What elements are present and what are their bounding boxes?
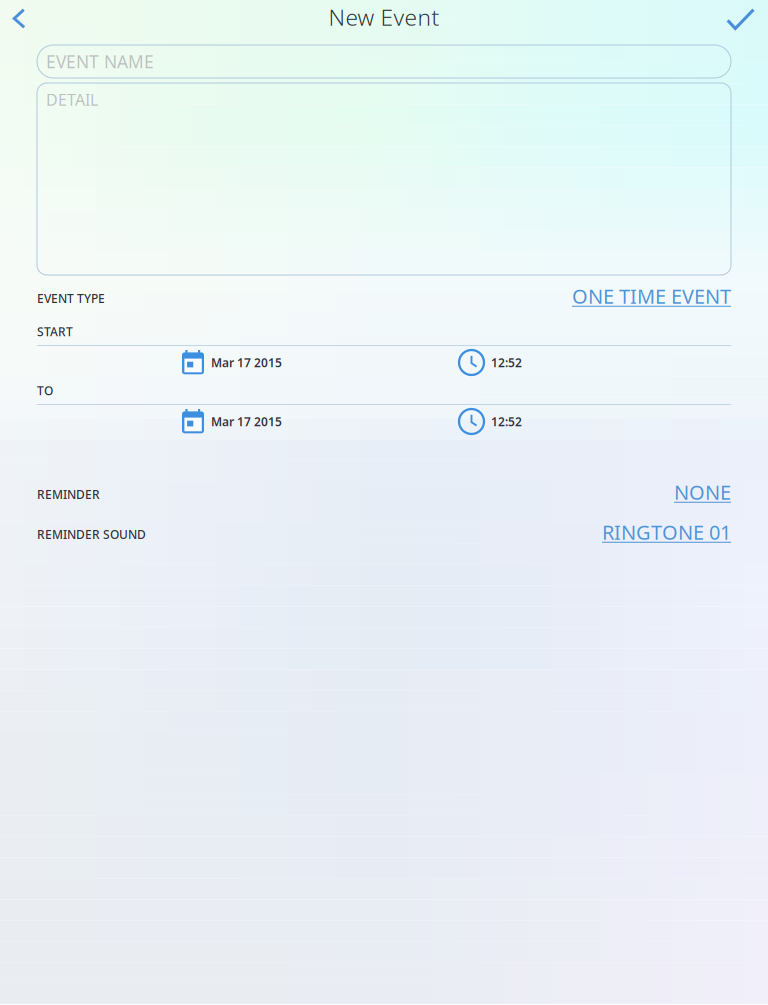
staticText: NONE: [674, 479, 731, 505]
staticText: START: [37, 323, 73, 339]
button[interactable]: Mar 17 2015: [182, 409, 282, 434]
staticText: EVENT TYPE: [37, 290, 105, 306]
button[interactable]: Mar 17 2015: [182, 350, 282, 375]
staticText: EVENT NAME: [46, 50, 154, 73]
button[interactable]: DETAIL: [37, 83, 731, 275]
staticText: ONE TIME EVENT: [572, 283, 731, 309]
button[interactable]: EVENT NAME: [37, 45, 731, 78]
button[interactable]: Back: [0, 0, 39, 44]
button[interactable]: 12:52: [459, 409, 522, 434]
staticText: Mar 17 2015: [211, 413, 282, 429]
staticText: REMINDER SOUND: [37, 526, 146, 542]
staticText: RINGTONE 01: [602, 519, 731, 545]
staticText: Mar 17 2015: [211, 354, 282, 370]
staticText: REMINDER: [37, 486, 100, 502]
button[interactable]: 12:52: [459, 350, 522, 375]
staticText: TO: [37, 382, 53, 398]
button[interactable]: ONE TIME EVENT: [572, 280, 731, 306]
staticText: New Event: [328, 2, 439, 32]
staticText: 12:52: [491, 354, 522, 370]
button[interactable]: RINGTONE 01: [602, 516, 731, 542]
staticText: DETAIL: [46, 89, 98, 110]
button[interactable]: Save: [713, 0, 768, 44]
staticText: 12:52: [491, 413, 522, 429]
button[interactable]: NONE: [674, 476, 731, 502]
